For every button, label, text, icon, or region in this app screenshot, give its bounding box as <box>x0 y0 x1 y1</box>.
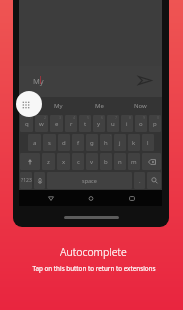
staticText: f <box>77 139 80 147</box>
staticText: u <box>111 120 115 128</box>
staticText: j <box>119 139 121 147</box>
staticText: 2 <box>44 115 47 120</box>
button[interactable]: ?123 <box>20 172 32 189</box>
button[interactable]: Home <box>83 190 99 206</box>
staticText: Me <box>95 102 104 110</box>
button[interactable]: 9 <box>135 115 147 132</box>
staticText: e <box>55 120 59 128</box>
staticText: space <box>82 177 97 184</box>
button[interactable]: 2 <box>35 115 48 132</box>
staticText: v <box>90 158 94 166</box>
staticText: t <box>84 120 87 128</box>
button[interactable]: 1 <box>20 115 33 132</box>
staticText: o <box>139 120 143 128</box>
staticText: z <box>47 158 50 166</box>
button[interactable]: z <box>42 153 55 170</box>
button[interactable]: 4 <box>65 115 77 132</box>
button[interactable]: Back <box>43 190 59 206</box>
button[interactable]: Shift <box>20 153 40 170</box>
button[interactable]: Recents <box>124 190 140 206</box>
button[interactable]: 5 <box>79 115 91 132</box>
staticText: h <box>104 139 108 147</box>
staticText: n <box>118 158 122 166</box>
button[interactable]: m <box>128 153 140 170</box>
button[interactable]: c <box>72 153 84 170</box>
button[interactable]: l <box>142 134 154 151</box>
button[interactable]: Extensions <box>16 91 42 117</box>
button[interactable]: a <box>28 134 41 151</box>
button[interactable]: Me <box>79 97 120 114</box>
button[interactable]: ' <box>100 134 112 151</box>
staticText: r <box>70 120 73 128</box>
staticText: 3 <box>59 115 62 120</box>
staticText: l <box>147 139 149 147</box>
button[interactable]: My <box>38 97 79 114</box>
staticText: p <box>153 120 157 128</box>
staticText: 7 <box>115 115 118 120</box>
button[interactable]: x <box>57 153 70 170</box>
staticText: q <box>25 120 29 128</box>
staticText: Now <box>134 102 147 110</box>
button[interactable]: g <box>86 134 98 151</box>
staticText: 4 <box>73 115 76 120</box>
staticText: 5 <box>87 115 90 120</box>
staticText: a <box>33 139 37 147</box>
staticText: Tap on this button to return to extensio… <box>32 264 156 273</box>
button[interactable]: d <box>58 134 70 151</box>
button[interactable]: Backspace <box>142 153 161 170</box>
button[interactable]: 7 <box>107 115 119 132</box>
button[interactable]: s <box>43 134 56 151</box>
staticText: b <box>104 158 108 166</box>
button[interactable]: 0 <box>149 115 161 132</box>
staticText: My <box>54 102 63 110</box>
button[interactable]: k <box>128 134 140 151</box>
staticText: ?123 <box>21 177 32 184</box>
button[interactable]: f <box>72 134 84 151</box>
button[interactable]: 8 <box>121 115 133 132</box>
button[interactable]: space <box>47 172 132 189</box>
button[interactable]: v <box>86 153 98 170</box>
staticText: g <box>90 139 94 147</box>
staticText: Autocomplete <box>60 245 127 259</box>
staticText: i <box>126 120 128 128</box>
staticText: 0 <box>157 115 160 120</box>
button[interactable]: Send <box>135 70 155 90</box>
staticText: . <box>139 177 141 185</box>
staticText: 6 <box>101 115 104 120</box>
button[interactable]: Now <box>120 97 161 114</box>
button[interactable]: b <box>100 153 112 170</box>
staticText: d <box>62 139 66 147</box>
staticText: 8 <box>129 115 132 120</box>
staticText: c <box>77 158 80 166</box>
button[interactable]: Search <box>147 172 161 189</box>
button[interactable]: 3 <box>50 115 63 132</box>
staticText: 9 <box>143 115 146 120</box>
staticText: y <box>97 120 101 128</box>
staticText: w <box>39 120 44 128</box>
staticText: s <box>48 139 51 147</box>
staticText: k <box>132 139 136 147</box>
staticText: x <box>62 158 66 166</box>
button[interactable]: Voice input <box>34 172 45 189</box>
button[interactable]: 6 <box>93 115 105 132</box>
staticText: m <box>131 158 137 166</box>
staticText: 1 <box>29 115 32 120</box>
button[interactable]: j <box>114 134 126 151</box>
button[interactable]: n <box>114 153 126 170</box>
staticText: My <box>33 76 44 86</box>
